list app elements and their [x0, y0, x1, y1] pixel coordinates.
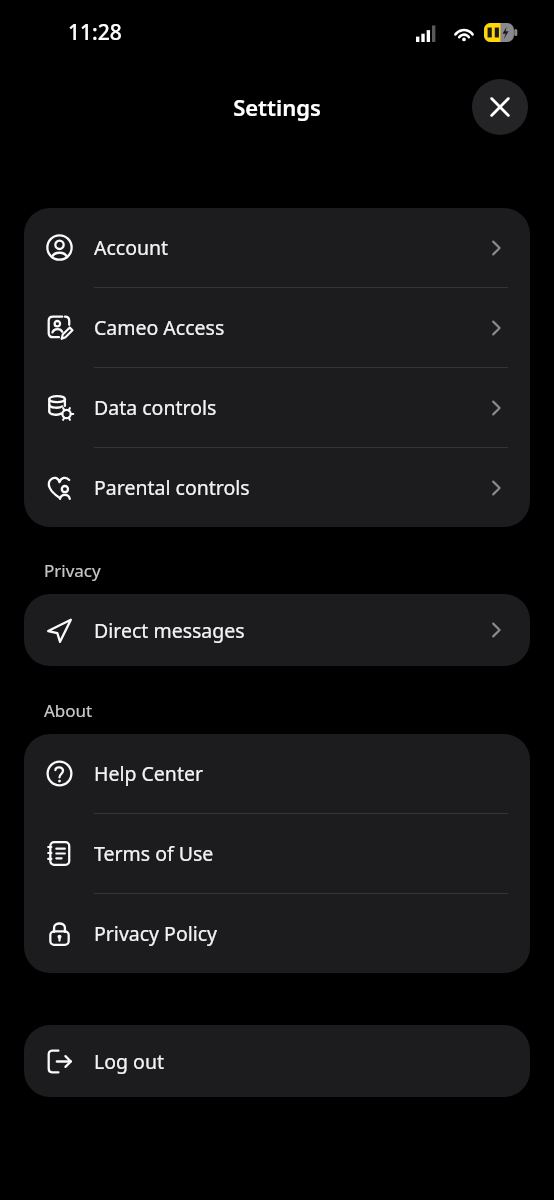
staticText: Parental controls — [94, 474, 486, 501]
staticText: Privacy Policy — [94, 920, 506, 947]
button[interactable]: Help Center — [24, 734, 530, 813]
staticText: Privacy — [44, 559, 101, 582]
button[interactable]: Account — [24, 208, 530, 287]
staticText: Help Center — [94, 760, 506, 787]
button[interactable]: Terms of Use — [24, 814, 530, 893]
staticText: Terms of Use — [94, 840, 506, 867]
button[interactable]: Direct messages — [24, 594, 530, 666]
staticText: Settings — [233, 92, 321, 122]
staticText: Log out — [94, 1048, 506, 1075]
button[interactable]: Log out — [24, 1025, 530, 1097]
staticText: About — [44, 699, 93, 722]
button[interactable]: Privacy Policy — [24, 894, 530, 973]
button[interactable]: Parental controls — [24, 448, 530, 527]
staticText: Cameo Access — [94, 314, 486, 341]
button[interactable]: Close — [472, 79, 528, 135]
staticText: Account — [94, 234, 486, 261]
staticText: Data controls — [94, 394, 486, 421]
staticText: Direct messages — [94, 617, 486, 644]
staticText: 11:28 — [68, 18, 122, 47]
button[interactable]: Data controls — [24, 368, 530, 447]
button[interactable]: Cameo Access — [24, 288, 530, 367]
